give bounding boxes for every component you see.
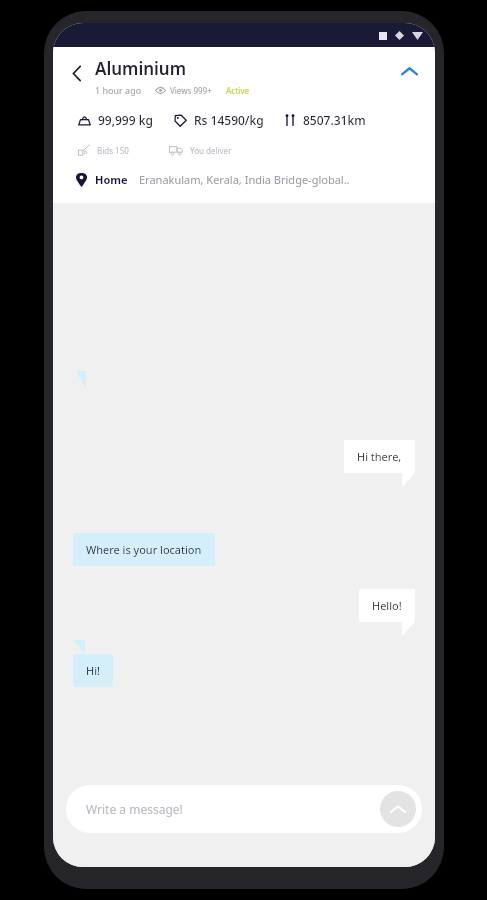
- button[interactable]: Collapse details: [393, 55, 425, 87]
- button[interactable]: Where is your location: [73, 533, 215, 566]
- staticText: 8507.31km: [303, 112, 366, 128]
- staticText: Hi there,: [357, 449, 402, 464]
- staticText: You deliver: [190, 145, 232, 156]
- button[interactable]: Hi!: [73, 654, 113, 687]
- staticText: Hi!: [86, 663, 100, 678]
- button[interactable]: Write a message!: [66, 785, 422, 833]
- button[interactable]: Hello!: [359, 589, 415, 622]
- staticText: Bids 150: [97, 145, 129, 156]
- staticText: Views 999+: [170, 85, 212, 96]
- staticText: Aluminium: [95, 57, 187, 80]
- staticText: Rs 14590/kg: [194, 112, 264, 128]
- staticText: Active: [226, 85, 250, 96]
- button[interactable]: Hi there,: [344, 440, 415, 473]
- staticText: Where is your location: [86, 542, 202, 557]
- staticText: Eranakulam, Kerala, India Bridge-global.…: [139, 172, 350, 187]
- button[interactable]: Back: [59, 55, 95, 91]
- staticText: 99,999 kg: [98, 112, 153, 128]
- staticText: Home: [95, 172, 128, 187]
- staticText: Write a message!: [86, 801, 380, 817]
- staticText: Hello!: [372, 598, 402, 613]
- button[interactable]: Send: [380, 791, 416, 827]
- staticText: 1 hour ago: [95, 84, 142, 96]
